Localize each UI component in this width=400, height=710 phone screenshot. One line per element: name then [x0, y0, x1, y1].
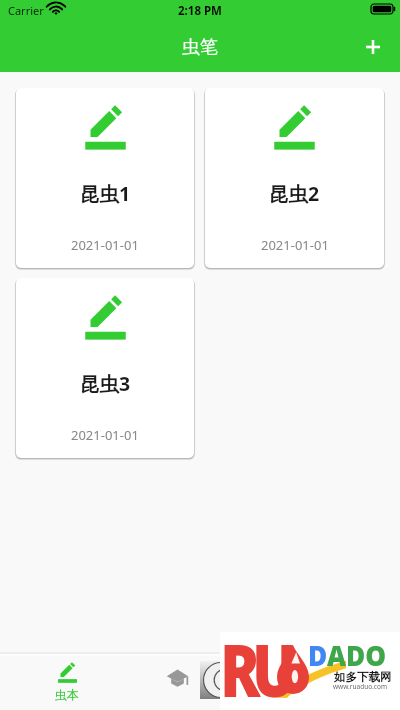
button[interactable]: Add note — [349, 23, 397, 71]
button[interactable]: 昆虫2 — [205, 88, 384, 268]
staticText: 2021-01-01 — [261, 236, 329, 254]
button[interactable]: 昆虫1 — [16, 88, 194, 268]
staticText: 2021-01-01 — [71, 426, 139, 444]
staticText: 如多下载网 — [334, 670, 392, 684]
staticText: D — [308, 636, 327, 674]
staticText: www.ruaduo.com — [333, 682, 387, 691]
staticText: 昆虫2 — [269, 180, 320, 207]
button[interactable]: Discover — [233, 656, 344, 710]
button[interactable]: Profile — [344, 656, 400, 710]
staticText: Carrier — [8, 3, 44, 18]
staticText: U — [252, 620, 298, 698]
staticText: 昆虫1 — [80, 180, 131, 207]
button[interactable]: Notes — [11, 656, 122, 710]
staticText: 昆虫3 — [80, 370, 131, 397]
button[interactable]: 昆虫3 — [16, 278, 194, 458]
button[interactable]: Study — [122, 656, 233, 710]
staticText: 虫本 — [55, 687, 79, 702]
staticText: 2:18 PM — [178, 3, 222, 19]
staticText: 虫笔 — [182, 36, 218, 59]
staticText: ADO — [327, 636, 386, 674]
staticText: R — [220, 620, 261, 698]
staticText: 2021-01-01 — [71, 236, 139, 254]
